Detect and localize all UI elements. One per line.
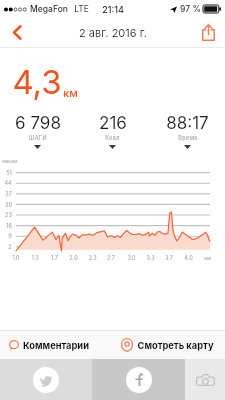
- staticText: 4,3: [12, 62, 62, 102]
- staticText: 30: [5, 202, 12, 209]
- staticText: Смотреть карту: [137, 340, 214, 351]
- staticText: LTE: [74, 4, 89, 14]
- staticText: 3.0: [127, 255, 136, 262]
- staticText: 2 авг. 2016 г.: [79, 26, 147, 39]
- staticText: 216: [99, 113, 127, 134]
- staticText: 2: [8, 244, 12, 251]
- button[interactable]: Share on Facebook: [92, 359, 185, 400]
- staticText: 21:14: [102, 4, 124, 15]
- staticText: MegaFon: [30, 4, 68, 14]
- staticText: км: [63, 86, 78, 99]
- button[interactable]: 216: [75, 113, 150, 149]
- staticText: Комментарии: [23, 340, 89, 351]
- staticText: 37: [5, 191, 12, 198]
- staticText: 97 %: [180, 4, 201, 14]
- button[interactable]: Take photo: [185, 359, 225, 400]
- button[interactable]: Смотреть карту: [112, 331, 225, 359]
- staticText: 1.7: [51, 255, 58, 262]
- button[interactable]: Share on Twitter: [0, 359, 92, 400]
- staticText: 1.0: [12, 255, 20, 262]
- staticText: Ккал: [105, 135, 120, 142]
- staticText: ШАГИ: [29, 135, 47, 142]
- staticText: 16: [6, 223, 12, 230]
- button[interactable]: Share: [191, 18, 225, 47]
- staticText: 44: [4, 180, 12, 187]
- button[interactable]: Back: [0, 18, 34, 47]
- staticText: 88:17: [166, 113, 209, 134]
- staticText: 3.3: [146, 255, 155, 262]
- button[interactable]: 88:17: [150, 113, 225, 149]
- staticText: мин/км: [2, 159, 18, 164]
- staticText: 23: [5, 212, 12, 219]
- staticText: 9: [8, 233, 12, 240]
- staticText: км: [204, 255, 211, 261]
- staticText: 6 798: [15, 113, 61, 134]
- staticText: 2.0: [69, 255, 78, 262]
- staticText: 2.7: [107, 255, 115, 262]
- staticText: 1.3: [31, 255, 39, 262]
- staticText: 3.7: [165, 255, 173, 262]
- button[interactable]: Комментарии: [0, 331, 112, 359]
- button[interactable]: 6 798: [0, 113, 75, 149]
- staticText: 2.3: [88, 255, 97, 262]
- staticText: Время: [178, 135, 198, 142]
- staticText: 4.0: [184, 255, 193, 262]
- staticText: 51: [6, 170, 12, 177]
